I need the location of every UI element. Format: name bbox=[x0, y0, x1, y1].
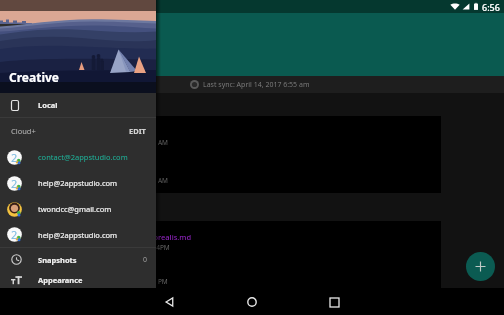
staticText: 2 bbox=[11, 150, 18, 165]
button[interactable]: 2 bbox=[0, 170, 156, 196]
button[interactable]: 2 bbox=[0, 222, 156, 247]
button[interactable]: Add note bbox=[466, 252, 495, 281]
staticText: EDIT bbox=[129, 126, 146, 136]
staticText: Local bbox=[38, 100, 58, 110]
staticText: 2 bbox=[11, 227, 18, 242]
staticText: Camp.md bbox=[100, 127, 135, 137]
staticText: Last sync: April 14, 2017 6:55 am bbox=[203, 80, 310, 90]
staticText: Cloud+ bbox=[11, 126, 36, 136]
button[interactable]: Home bbox=[239, 289, 265, 315]
staticText: April 13, 2017 9:03 PM bbox=[100, 277, 168, 286]
staticText: twondcc@gmail.com bbox=[38, 204, 112, 214]
button[interactable]: EDIT bbox=[127, 124, 148, 138]
staticText: April 14, 2017 6:52 AM bbox=[100, 138, 168, 147]
button[interactable]: Trail.md bbox=[0, 154, 441, 192]
button[interactable]: Camp.md bbox=[0, 116, 441, 154]
button[interactable]: Snapshots bbox=[0, 248, 156, 271]
staticText: help@2appstudio.com bbox=[38, 230, 118, 240]
staticText: April 13, 2017 10:24PM bbox=[100, 243, 170, 252]
button[interactable]: Appearance bbox=[0, 271, 156, 288]
button[interactable]: 2 bbox=[0, 144, 156, 170]
staticText: 2 bbox=[11, 176, 18, 191]
staticText: 6:56 bbox=[482, 1, 500, 13]
staticText: Night Aurora Borealis.md bbox=[100, 232, 192, 242]
button[interactable]: twondcc@gmail.com bbox=[0, 196, 156, 222]
staticText: April 14, 2017 6:41 AM bbox=[100, 176, 168, 185]
staticText: Snapshots bbox=[38, 255, 77, 265]
staticText: help@2appstudio.com bbox=[38, 178, 118, 188]
staticText: Creative bbox=[9, 69, 59, 85]
staticText: contact@2appstudio.com bbox=[38, 152, 128, 162]
staticText: 0 bbox=[143, 255, 148, 265]
button[interactable]: Recent apps bbox=[321, 289, 347, 315]
button[interactable]: Local bbox=[0, 93, 156, 117]
button[interactable]: Sunrise.md bbox=[0, 255, 441, 289]
button[interactable]: Night Aurora Borealis.md bbox=[0, 221, 441, 255]
staticText: Appearance bbox=[38, 275, 83, 285]
button[interactable]: Back bbox=[156, 289, 182, 315]
